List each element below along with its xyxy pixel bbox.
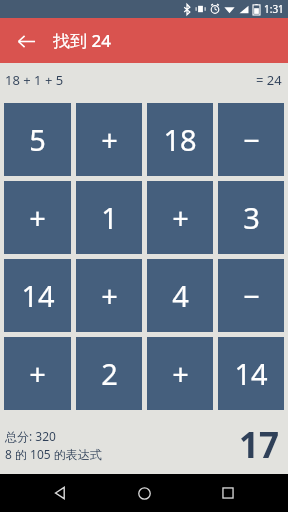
staticText: 14 [21, 276, 55, 315]
button[interactable]: 14 [4, 259, 71, 332]
button[interactable]: 18 [147, 103, 213, 176]
staticText: 1:31 [264, 2, 284, 16]
staticText: 总分: 320 [5, 428, 56, 444]
button[interactable]: 2 [76, 337, 142, 410]
button[interactable]: + [147, 181, 213, 254]
staticText: + [172, 198, 189, 237]
staticText: 2 [101, 354, 118, 393]
staticText: + [29, 198, 46, 237]
button[interactable]: − [218, 259, 284, 332]
staticText: = 24 [256, 71, 282, 89]
staticText: 1 [101, 198, 118, 237]
button[interactable]: + [76, 103, 142, 176]
button[interactable]: + [147, 337, 213, 410]
button[interactable]: + [4, 337, 71, 410]
button[interactable]: 1 [76, 181, 142, 254]
staticText: 18 [163, 120, 197, 159]
button[interactable]: 3 [218, 181, 284, 254]
button[interactable]: Back [10, 25, 42, 57]
staticText: 17 [239, 421, 280, 469]
staticText: 14 [234, 354, 268, 393]
staticText: 18 + 1 + 5 [5, 71, 64, 89]
button[interactable]: Home [120, 474, 168, 512]
staticText: + [172, 354, 189, 393]
staticText: 找到 24 [53, 29, 111, 52]
button[interactable]: Recent apps [204, 474, 252, 512]
button[interactable]: − [218, 103, 284, 176]
button[interactable]: + [76, 259, 142, 332]
staticText: + [101, 276, 118, 315]
button[interactable]: 5 [4, 103, 71, 176]
staticText: 3 [243, 198, 260, 237]
staticText: 5 [29, 120, 46, 159]
button[interactable]: 14 [218, 337, 284, 410]
staticText: − [243, 120, 260, 159]
button[interactable]: Back [36, 474, 84, 512]
staticText: + [29, 354, 46, 393]
staticText: 8 的 105 的表达式 [5, 446, 102, 462]
staticText: 4 [172, 276, 189, 315]
staticText: − [243, 276, 260, 315]
staticText: + [101, 120, 118, 159]
button[interactable]: + [4, 181, 71, 254]
button[interactable]: 4 [147, 259, 213, 332]
